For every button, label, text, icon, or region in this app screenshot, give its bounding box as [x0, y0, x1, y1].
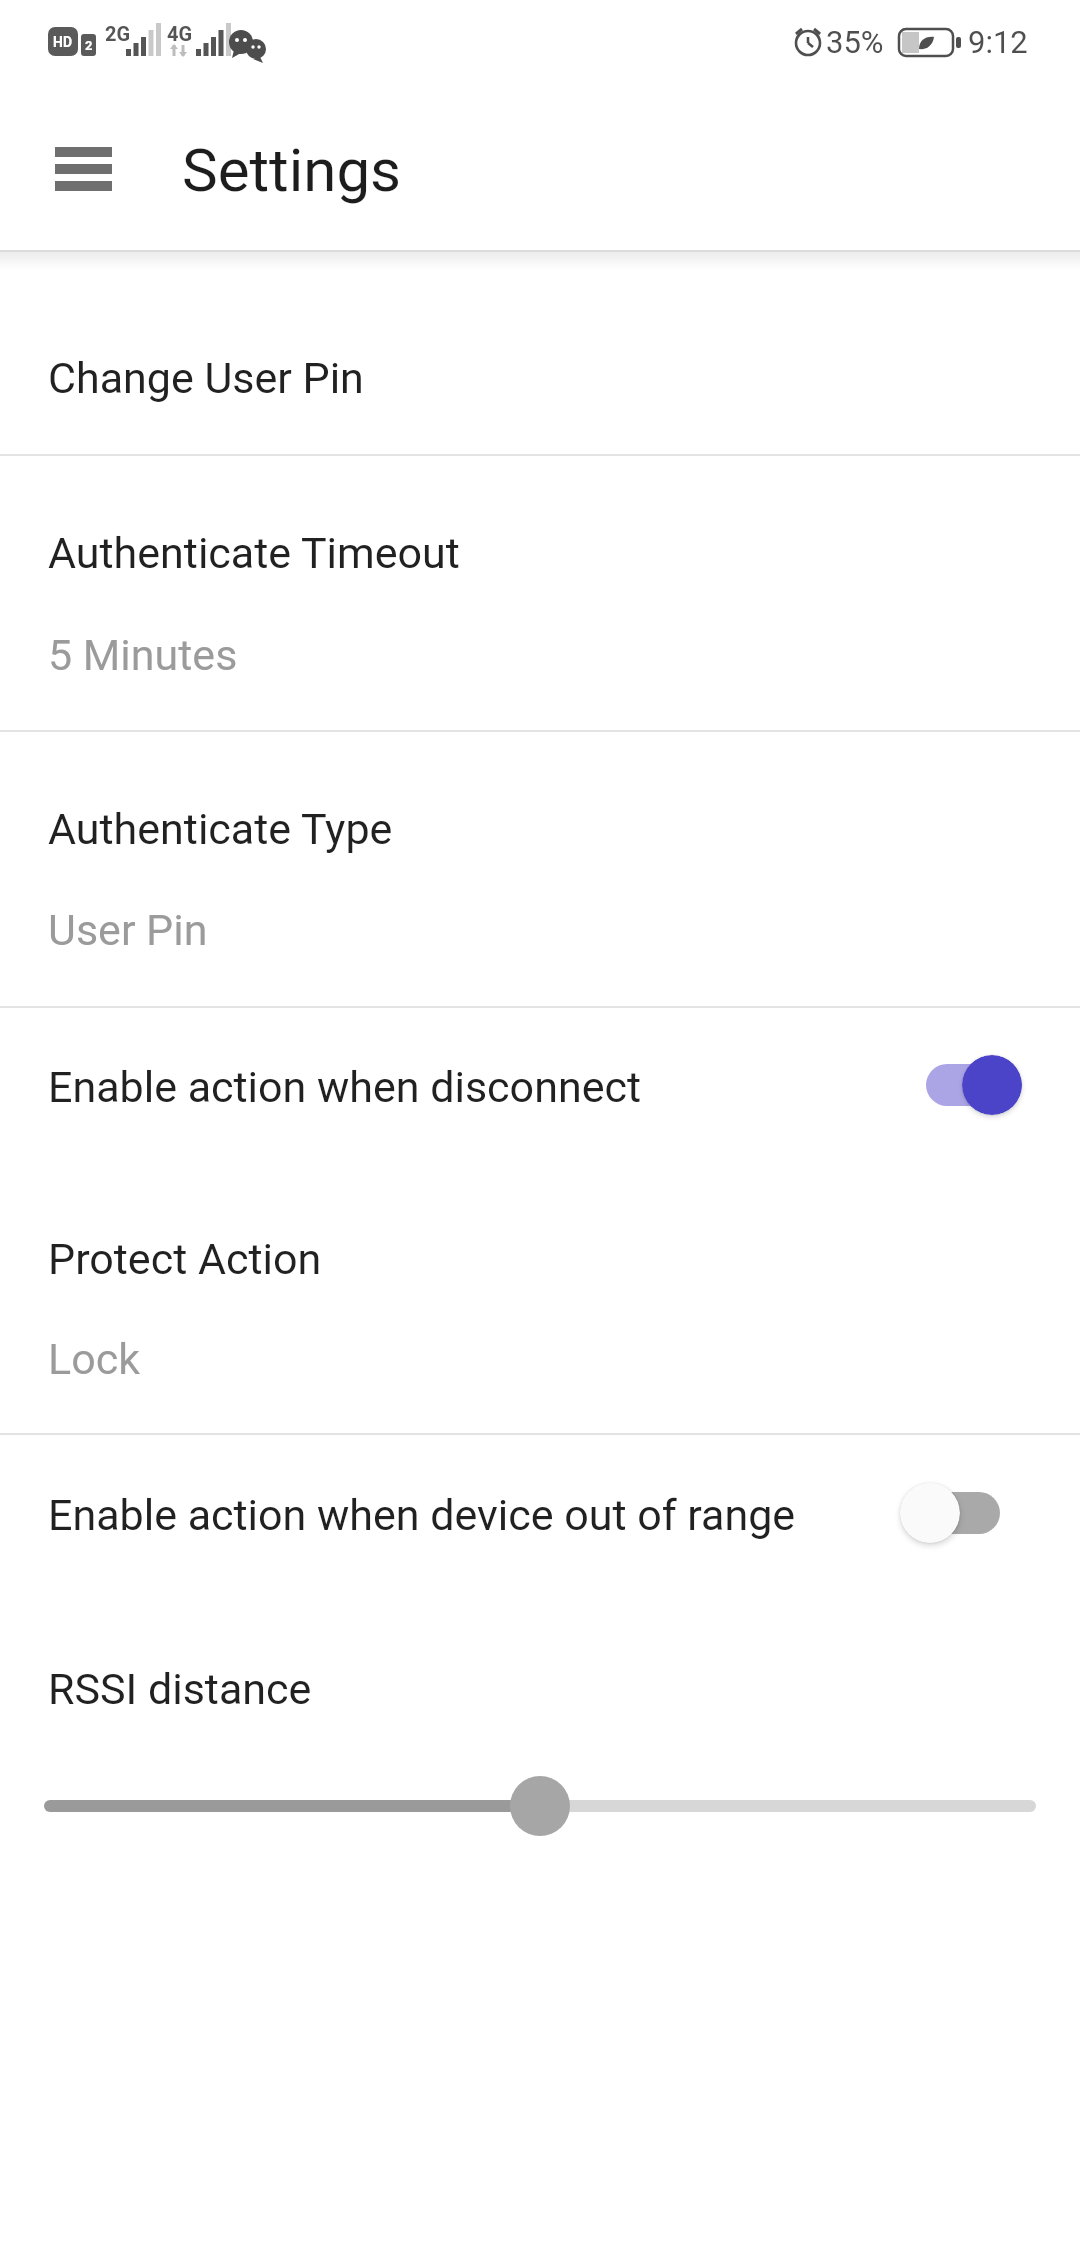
staticText: Change User Pin	[48, 353, 364, 403]
staticText: 5 Minutes	[48, 630, 238, 680]
staticText: 9:12	[968, 24, 1028, 60]
staticText: RSSI distance	[48, 1664, 312, 1714]
staticText: Authenticate Timeout	[48, 528, 460, 578]
staticText: 4G	[167, 22, 193, 45]
staticText: 2	[85, 38, 93, 53]
staticText: Protect Action	[48, 1234, 322, 1284]
staticText: 2G	[105, 22, 131, 45]
staticText: Enable action when disconnect	[48, 1062, 642, 1112]
staticText: Lock	[48, 1334, 140, 1384]
staticText: Settings	[182, 135, 402, 205]
staticText: 35%	[826, 24, 884, 60]
staticText: HD	[53, 34, 73, 50]
staticText: User Pin	[48, 905, 208, 955]
staticText: Authenticate Type	[48, 804, 393, 854]
staticText: Enable action when device out of range	[48, 1490, 796, 1540]
